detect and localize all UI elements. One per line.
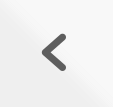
button[interactable]: Back — [0, 0, 113, 107]
